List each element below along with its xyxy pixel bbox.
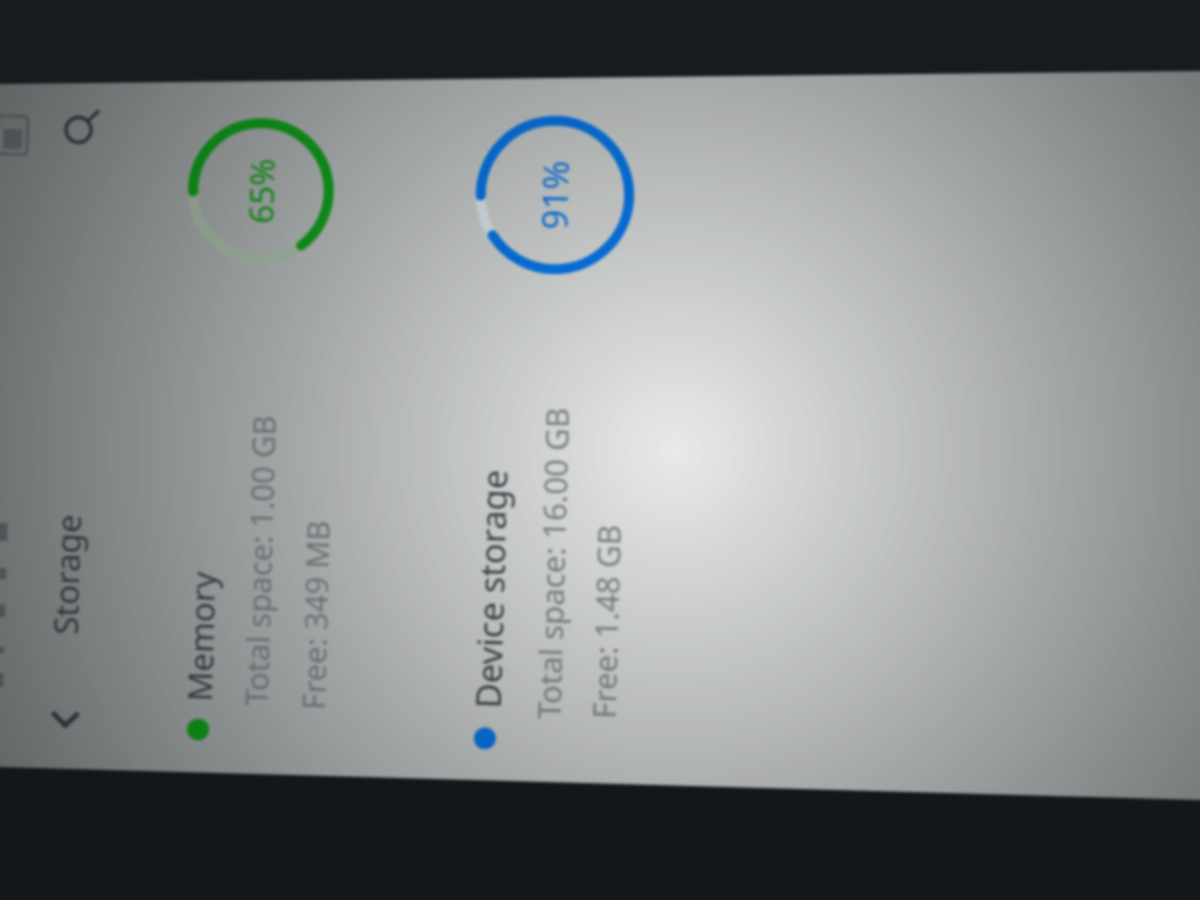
staticText: Device storage	[464, 469, 517, 709]
staticText: Storage	[43, 513, 91, 635]
button[interactable]: Back	[36, 692, 94, 749]
staticText: Total space: 16.00 GB	[527, 407, 579, 720]
staticText: 91%	[530, 159, 580, 231]
staticText: Free: 1.48 GB	[583, 524, 631, 719]
staticText: Memory	[177, 571, 225, 702]
staticText: 65%	[238, 157, 285, 225]
staticText: Free: 349 MB	[292, 519, 339, 710]
staticText: Total space: 1.00 GB	[235, 414, 285, 706]
button[interactable]: Search	[49, 99, 106, 157]
